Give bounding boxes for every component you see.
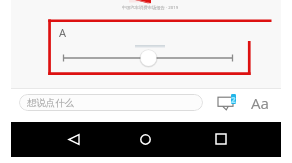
staticText: A <box>59 25 67 40</box>
staticText: 中国汽车消费市场报告 · 2019 <box>105 4 195 10</box>
button[interactable]: Aa <box>247 92 273 113</box>
staticText: 想说点什么 <box>27 97 74 109</box>
button[interactable]: Recent apps <box>208 129 233 149</box>
staticText: 2 <box>231 94 236 104</box>
button[interactable]: Comments <box>216 92 240 114</box>
staticText: Aa <box>251 93 270 113</box>
button[interactable]: Home <box>133 129 158 149</box>
button[interactable]: 想说点什么 <box>19 94 203 111</box>
button[interactable]: Back <box>61 129 86 149</box>
